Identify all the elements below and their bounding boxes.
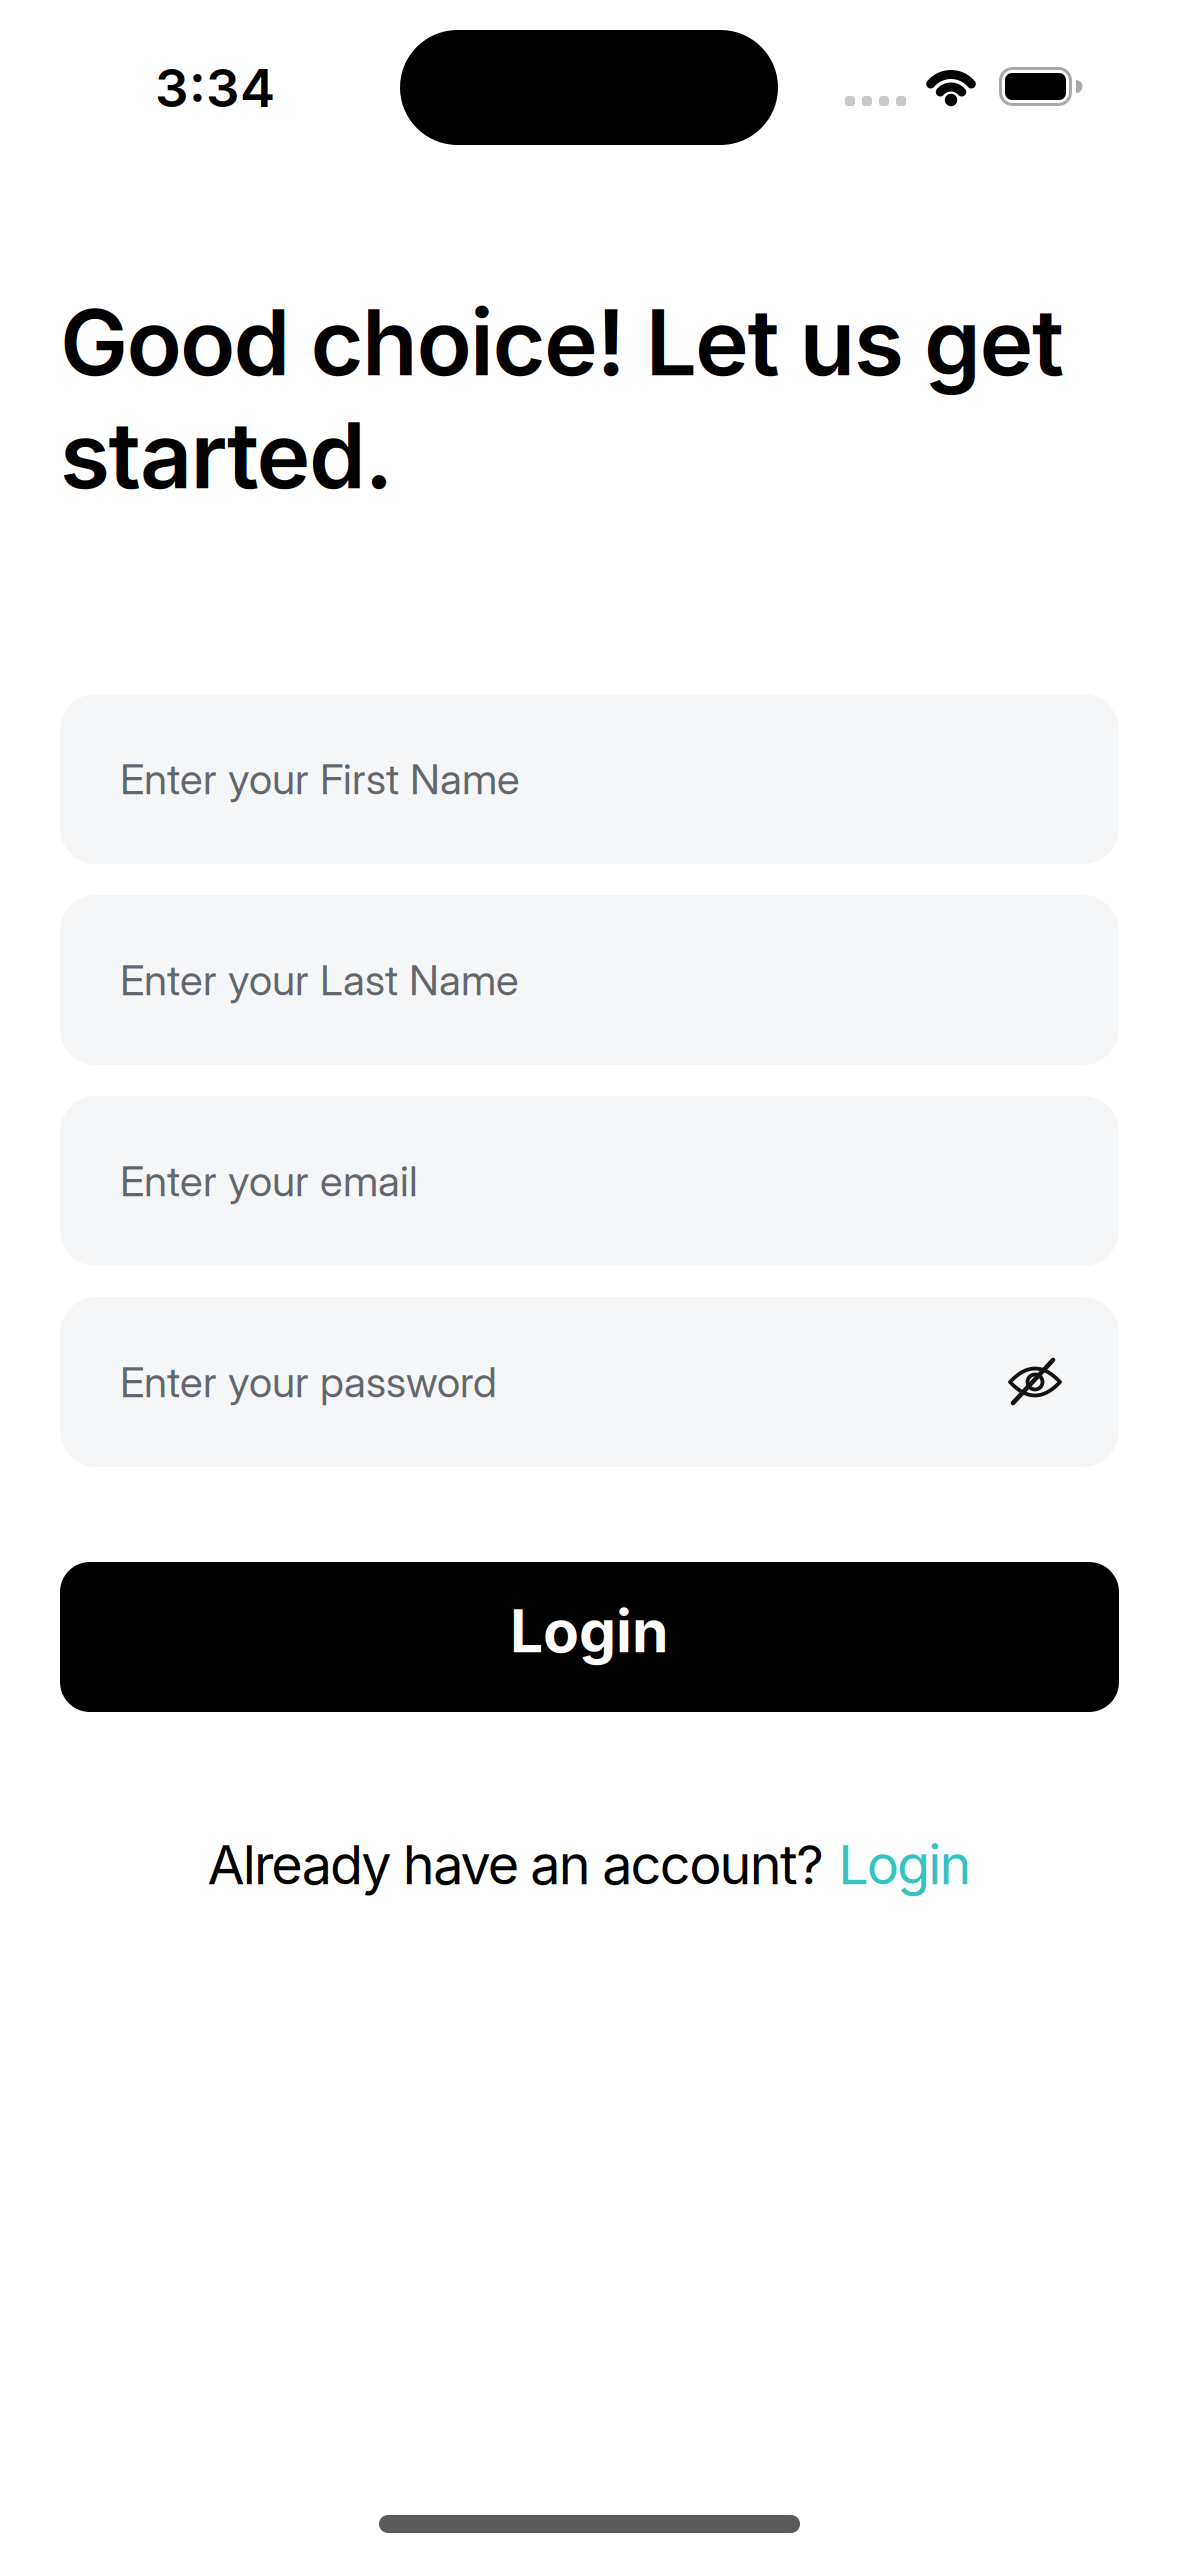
button[interactable]: Enter your Last Name bbox=[60, 895, 1119, 1065]
button[interactable]: Login bbox=[838, 1832, 971, 1897]
button[interactable]: Enter your email bbox=[60, 1096, 1119, 1266]
staticText: Enter your First Name bbox=[120, 754, 520, 804]
button[interactable] bbox=[1007, 1356, 1063, 1408]
staticText: Already have an account? bbox=[207, 1832, 824, 1897]
staticText: Good choice! Let us get started. bbox=[60, 287, 1064, 510]
staticText: Enter your Last Name bbox=[120, 955, 519, 1005]
staticText: Login bbox=[510, 1595, 669, 1666]
staticText: Enter your email bbox=[120, 1156, 418, 1206]
staticText: 3:34 bbox=[155, 56, 275, 120]
staticText: Enter your password bbox=[120, 1357, 497, 1407]
button[interactable]: Enter your password bbox=[60, 1297, 1119, 1467]
staticText: Login bbox=[838, 1832, 971, 1897]
button[interactable]: Enter your First Name bbox=[60, 694, 1119, 864]
button[interactable]: Login bbox=[60, 1562, 1119, 1712]
